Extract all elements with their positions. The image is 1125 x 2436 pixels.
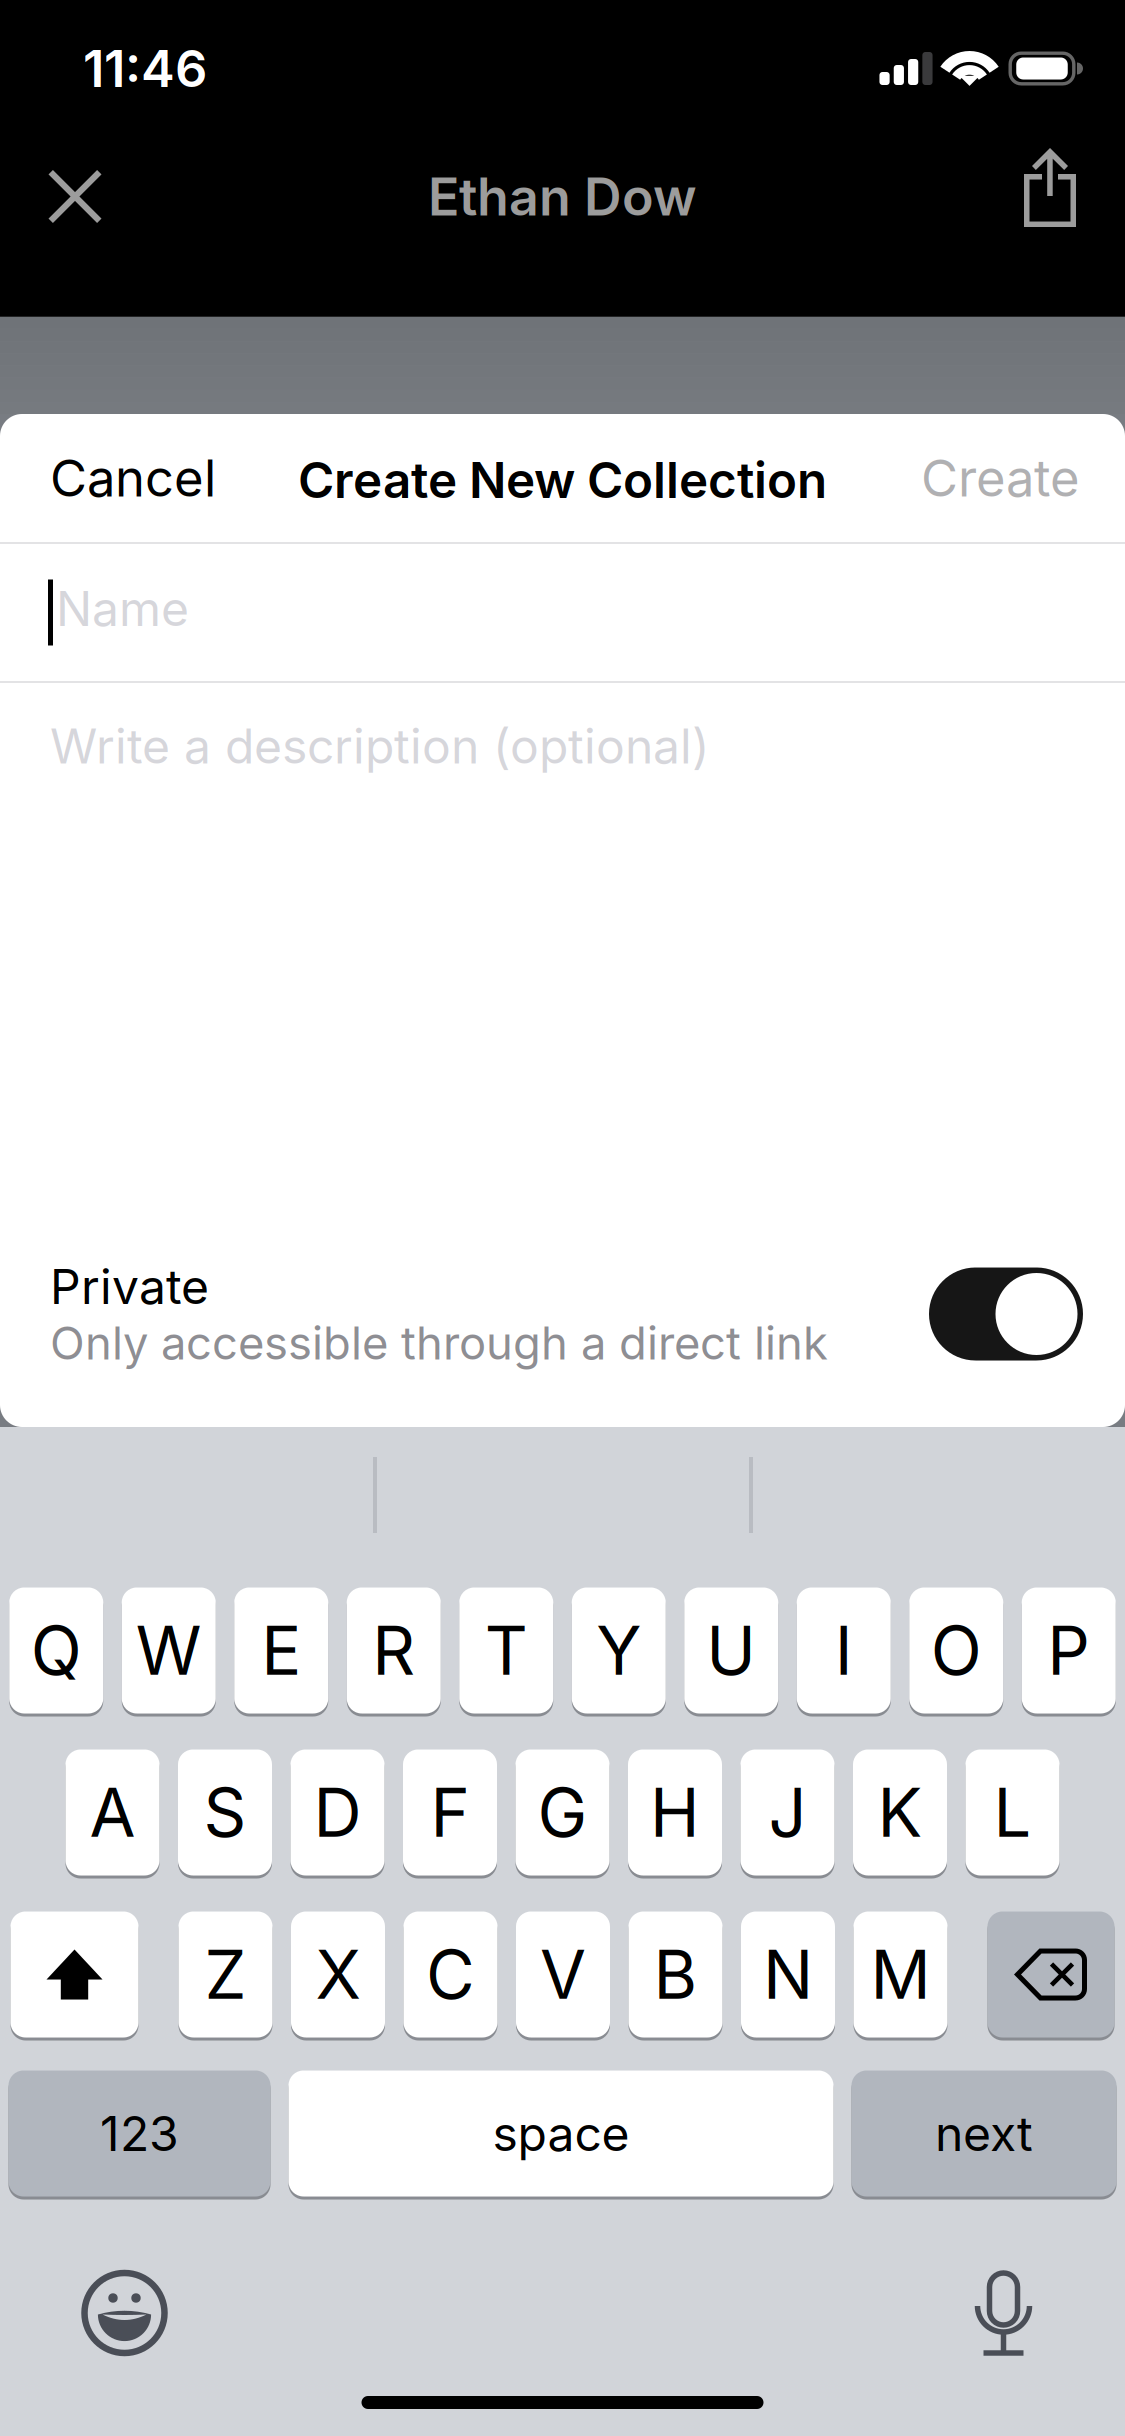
button[interactable]: J [740,1748,834,1877]
staticText: L [993,1772,1031,1853]
button[interactable]: C [403,1910,497,2039]
button[interactable]: G [515,1748,609,1877]
staticText: N [763,1934,813,2015]
button[interactable]: O [909,1586,1003,1715]
button[interactable]: Cancel [34,425,232,531]
staticText: Ethan Dow [428,165,697,228]
button[interactable]: Create [905,425,1096,531]
button[interactable]: Private [929,1267,1083,1360]
staticText: C [426,1934,475,2015]
staticText: E [261,1610,301,1691]
button[interactable]: Q [9,1586,103,1715]
button[interactable]: Share [997,141,1103,251]
button[interactable]: L [965,1748,1059,1877]
button[interactable]: Z [178,1910,272,2039]
staticText: Write a description (optional) [50,717,710,775]
staticText: S [203,1772,246,1853]
button[interactable]: I [797,1586,891,1715]
button[interactable]: V [516,1910,610,2039]
button[interactable]: D [290,1748,384,1877]
button[interactable]: Y [572,1586,666,1715]
button[interactable]: E [234,1586,328,1715]
button[interactable]: K [853,1748,947,1877]
staticText: Z [204,1934,246,2015]
button[interactable]: A [65,1748,159,1877]
button[interactable]: S [178,1748,272,1877]
button[interactable]: F [403,1748,497,1877]
staticText: H [650,1772,700,1853]
staticText: X [315,1934,360,2015]
staticText: Y [596,1610,641,1691]
staticText: W [136,1610,202,1691]
button[interactable]: U [684,1586,778,1715]
button[interactable]: H [628,1748,722,1877]
button[interactable]: Delete [987,1910,1114,2039]
button[interactable]: B [628,1910,722,2039]
staticText: V [540,1934,586,2015]
button[interactable]: Dictate [948,2258,1058,2368]
staticText: B [653,1934,697,2015]
button[interactable]: space [288,2069,833,2198]
button[interactable]: X [291,1910,385,2039]
staticText: Create [921,447,1080,509]
button[interactable]: M [853,1910,947,2039]
button[interactable]: Name [0,544,1125,681]
staticText: 123 [100,2104,179,2163]
button[interactable]: T [459,1586,553,1715]
staticText: Create New Collection [298,450,827,510]
button[interactable]: R [347,1586,441,1715]
staticText: F [430,1772,469,1853]
staticText: R [372,1610,415,1691]
staticText: M [870,1934,930,2015]
staticText: space [492,2104,629,2163]
staticText: T [485,1610,528,1691]
staticText: Cancel [50,447,216,509]
staticText: G [537,1772,587,1853]
staticText: Private [50,1257,209,1316]
staticText: 11:46 [83,38,207,99]
staticText: O [931,1610,982,1691]
button[interactable]: Close [22,141,128,251]
button[interactable]: 123 [8,2069,270,2198]
staticText: I [835,1610,853,1691]
button[interactable]: Emoji [69,2258,179,2368]
button[interactable]: Shift [10,1910,138,2039]
button[interactable]: Write a description (optional) [0,683,1125,813]
staticText: Name [56,579,189,638]
button[interactable]: next [851,2069,1116,2198]
staticText: Only accessible through a direct link [50,1316,828,1370]
staticText: next [935,2104,1033,2163]
button[interactable]: W [122,1586,216,1715]
staticText: Q [31,1610,82,1691]
button[interactable]: P [1022,1586,1116,1715]
staticText: K [877,1772,922,1853]
staticText: U [706,1610,756,1691]
staticText: A [89,1772,135,1853]
staticText: D [313,1772,361,1853]
staticText: P [1047,1610,1090,1691]
staticText: J [768,1772,806,1853]
button[interactable]: N [741,1910,835,2039]
